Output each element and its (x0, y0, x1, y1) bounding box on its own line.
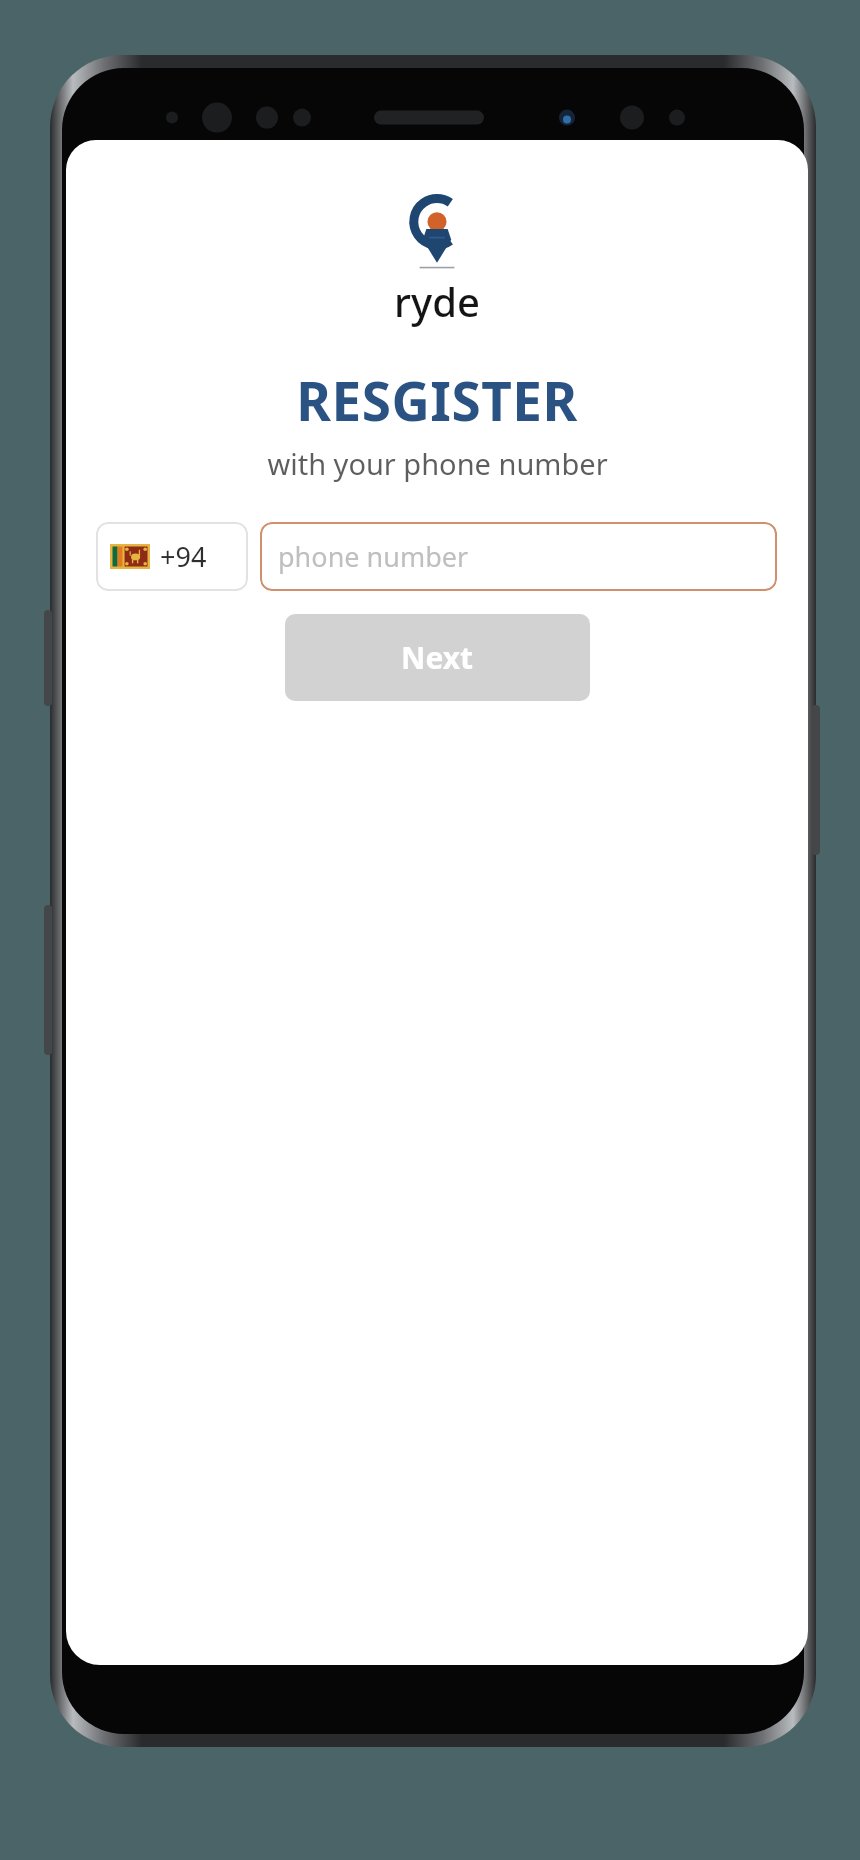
button[interactable]: +94 (96, 522, 248, 591)
button[interactable]: Next (285, 614, 590, 701)
other: ryde logo (408, 198, 466, 270)
staticText: with your phone number (267, 444, 608, 483)
staticText: Next (401, 637, 474, 678)
staticText: +94 (160, 538, 207, 575)
staticText: ryde (394, 274, 480, 328)
button[interactable]: phone number (260, 522, 777, 591)
staticText: phone number (278, 538, 469, 575)
staticText: RESGISTER (296, 364, 578, 436)
